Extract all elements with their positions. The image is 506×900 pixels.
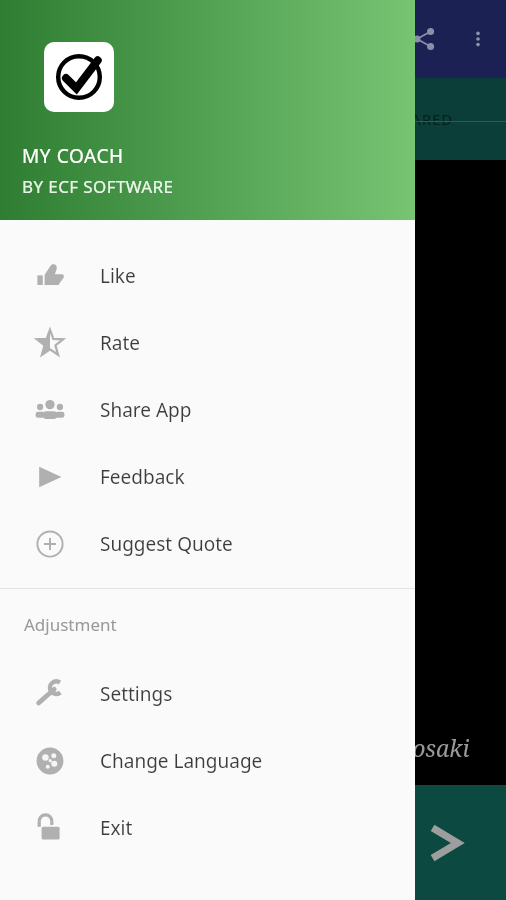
- staticText: yosaki: [400, 732, 470, 763]
- button[interactable]: Share App: [0, 376, 415, 443]
- button[interactable]: Rate: [0, 309, 415, 376]
- staticText: Rate: [100, 330, 141, 356]
- button[interactable]: Like: [0, 242, 415, 309]
- staticText: Like: [100, 263, 136, 289]
- staticText: Share App: [100, 397, 192, 423]
- button[interactable]: Exit: [0, 794, 415, 861]
- staticText: Settings: [100, 681, 173, 707]
- button[interactable]: Share: [400, 15, 448, 63]
- button[interactable]: More options: [450, 11, 506, 67]
- button[interactable]: Settings: [0, 660, 415, 727]
- staticText: Suggest Quote: [100, 531, 233, 557]
- button[interactable]: Change Language: [0, 727, 415, 794]
- staticText: Feedback: [100, 464, 185, 490]
- button[interactable]: Suggest Quote: [0, 510, 415, 577]
- button[interactable]: Feedback: [0, 443, 415, 510]
- staticText: Adjustment: [24, 613, 117, 636]
- staticText: Exit: [100, 815, 133, 841]
- staticText: MY COACH: [22, 143, 124, 169]
- staticText: BY ECF SOFTWARE: [22, 175, 174, 198]
- staticText: SHARED: [390, 109, 453, 129]
- button[interactable]: Next quote: [0, 785, 506, 900]
- staticText: Change Language: [100, 748, 263, 774]
